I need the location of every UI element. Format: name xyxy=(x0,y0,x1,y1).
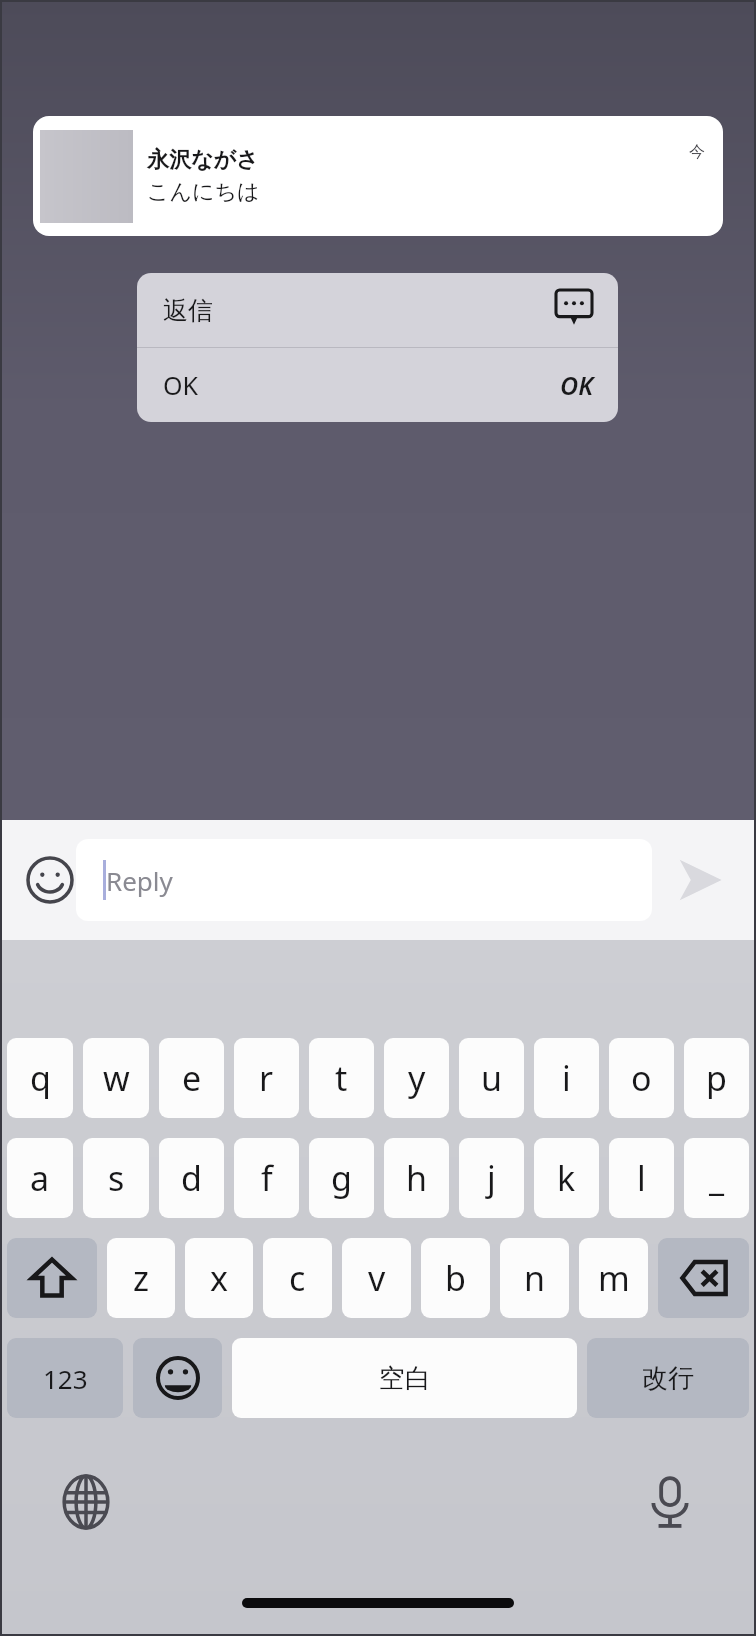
staticText: Reply xyxy=(106,863,173,898)
staticText: c xyxy=(289,1255,306,1301)
staticText: OK xyxy=(560,368,594,402)
button[interactable]: Shift xyxy=(7,1238,97,1318)
staticText: w xyxy=(103,1055,130,1101)
staticText: r xyxy=(259,1055,274,1101)
button[interactable]: y xyxy=(384,1038,449,1118)
button[interactable]: Change keyboard xyxy=(46,1462,126,1542)
button[interactable]: k xyxy=(534,1138,599,1218)
button[interactable]: z xyxy=(107,1238,175,1318)
staticText: e xyxy=(182,1055,202,1101)
staticText: 123 xyxy=(43,1361,88,1396)
staticText: o xyxy=(631,1055,652,1101)
staticText: u xyxy=(481,1055,503,1101)
button[interactable]: h xyxy=(384,1138,449,1218)
staticText: こんにちは xyxy=(147,178,260,206)
button[interactable]: Emoji keyboard xyxy=(133,1338,222,1418)
staticText: v xyxy=(368,1255,386,1301)
button[interactable]: Reply xyxy=(76,839,652,921)
button[interactable]: e xyxy=(159,1038,224,1118)
button[interactable]: m xyxy=(579,1238,648,1318)
staticText: m xyxy=(598,1255,630,1301)
button[interactable]: s xyxy=(83,1138,149,1218)
button[interactable]: b xyxy=(421,1238,490,1318)
button[interactable]: 改行 xyxy=(587,1338,749,1418)
staticText: j xyxy=(487,1155,496,1201)
staticText: f xyxy=(261,1155,273,1201)
button[interactable]: o xyxy=(609,1038,674,1118)
button[interactable]: 空白 xyxy=(232,1338,577,1418)
button[interactable]: 返信 xyxy=(137,273,618,347)
button[interactable]: g xyxy=(309,1138,374,1218)
button[interactable]: n xyxy=(500,1238,569,1318)
staticText: h xyxy=(406,1155,428,1201)
button[interactable]: OK xyxy=(137,348,618,422)
staticText: t xyxy=(335,1055,348,1101)
staticText: x xyxy=(210,1255,228,1301)
button[interactable]: _ xyxy=(684,1138,749,1218)
button[interactable]: f xyxy=(234,1138,299,1218)
button[interactable]: 123 xyxy=(7,1338,123,1418)
staticText: q xyxy=(30,1055,51,1101)
button[interactable]: j xyxy=(459,1138,524,1218)
staticText: b xyxy=(445,1255,466,1301)
staticText: n xyxy=(524,1255,546,1301)
staticText: p xyxy=(706,1055,727,1101)
staticText: 改行 xyxy=(642,1362,694,1395)
staticText: z xyxy=(133,1255,149,1301)
staticText: 空白 xyxy=(379,1362,431,1395)
staticText: l xyxy=(637,1155,646,1201)
button[interactable]: x xyxy=(185,1238,253,1318)
button[interactable]: p xyxy=(684,1038,749,1118)
staticText: _ xyxy=(709,1155,725,1201)
button[interactable]: d xyxy=(159,1138,224,1218)
button[interactable]: r xyxy=(234,1038,299,1118)
staticText: a xyxy=(30,1155,50,1201)
button[interactable]: Send xyxy=(652,832,748,928)
staticText: s xyxy=(108,1155,125,1201)
staticText: 返信 xyxy=(163,295,213,326)
button[interactable]: u xyxy=(459,1038,524,1118)
staticText: i xyxy=(562,1055,571,1101)
button[interactable]: t xyxy=(309,1038,374,1118)
staticText: 今 xyxy=(689,142,705,162)
staticText: g xyxy=(331,1155,352,1201)
button[interactable]: v xyxy=(342,1238,411,1318)
button[interactable]: c xyxy=(263,1238,332,1318)
button[interactable]: Emoji xyxy=(24,843,76,917)
staticText: d xyxy=(181,1155,202,1201)
button[interactable]: w xyxy=(83,1038,149,1118)
staticText: OK xyxy=(163,368,199,402)
staticText: k xyxy=(557,1155,576,1201)
button[interactable]: i xyxy=(534,1038,599,1118)
button[interactable]: l xyxy=(609,1138,674,1218)
staticText: y xyxy=(408,1055,426,1101)
button[interactable]: Backspace xyxy=(658,1238,749,1318)
button[interactable]: Voice input xyxy=(630,1462,710,1542)
button[interactable]: 永沢ながさ xyxy=(33,116,723,236)
button[interactable]: q xyxy=(7,1038,73,1118)
staticText: 永沢ながさ xyxy=(147,146,259,174)
button[interactable]: a xyxy=(7,1138,73,1218)
